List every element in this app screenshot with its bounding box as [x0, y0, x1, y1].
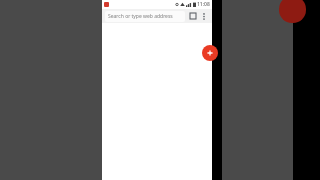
- button[interactable]: New tab: [202, 45, 218, 61]
- button[interactable]: More options: [199, 11, 209, 21]
- staticText: 11:08: [197, 1, 210, 8]
- staticText: Search or type web address: [108, 13, 173, 20]
- button[interactable]: Switch tabs: [187, 10, 199, 22]
- button[interactable]: Search or type web address: [105, 11, 185, 22]
